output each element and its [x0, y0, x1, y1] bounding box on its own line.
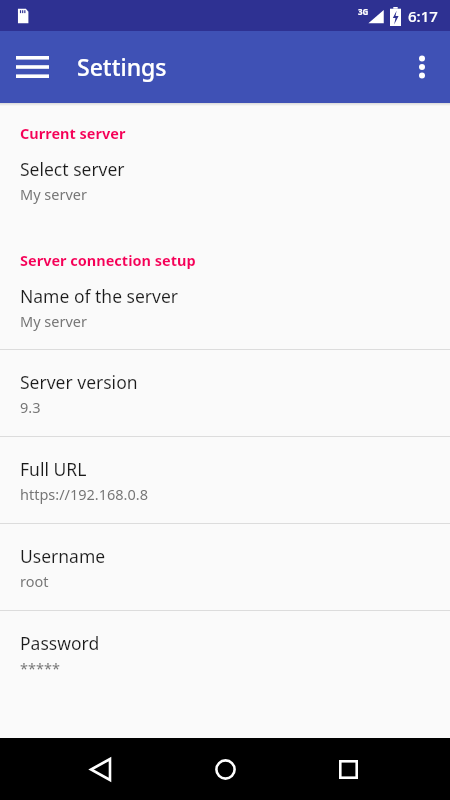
- button[interactable]: Password: [0, 611, 450, 697]
- staticText: 9.3: [20, 397, 41, 417]
- staticText: Full URL: [20, 457, 87, 481]
- staticText: 3G: [358, 6, 369, 17]
- button[interactable]: Back: [76, 745, 124, 793]
- button[interactable]: Home: [201, 745, 249, 793]
- staticText: Server version: [20, 370, 138, 394]
- staticText: Password: [20, 631, 100, 655]
- staticText: *****: [20, 658, 60, 678]
- staticText: Username: [20, 544, 106, 568]
- button[interactable]: Full URL: [0, 437, 450, 523]
- button[interactable]: Select server: [0, 143, 450, 226]
- staticText: root: [20, 571, 49, 591]
- staticText: https://192.168.0.8: [20, 484, 148, 504]
- button[interactable]: Server version: [0, 350, 450, 436]
- button[interactable]: Recent apps: [324, 745, 372, 793]
- staticText: Select server: [20, 157, 125, 181]
- staticText: 6:17: [408, 6, 438, 26]
- button[interactable]: Username: [0, 524, 450, 610]
- staticText: My server: [20, 184, 87, 204]
- staticText: Server connection setup: [20, 250, 196, 270]
- button[interactable]: Open navigation drawer: [8, 43, 56, 91]
- button[interactable]: More options: [398, 43, 446, 91]
- staticText: Settings: [77, 51, 167, 82]
- staticText: My server: [20, 311, 87, 331]
- staticText: Current server: [20, 123, 126, 143]
- staticText: Name of the server: [20, 284, 179, 308]
- button[interactable]: Name of the server: [0, 270, 450, 349]
